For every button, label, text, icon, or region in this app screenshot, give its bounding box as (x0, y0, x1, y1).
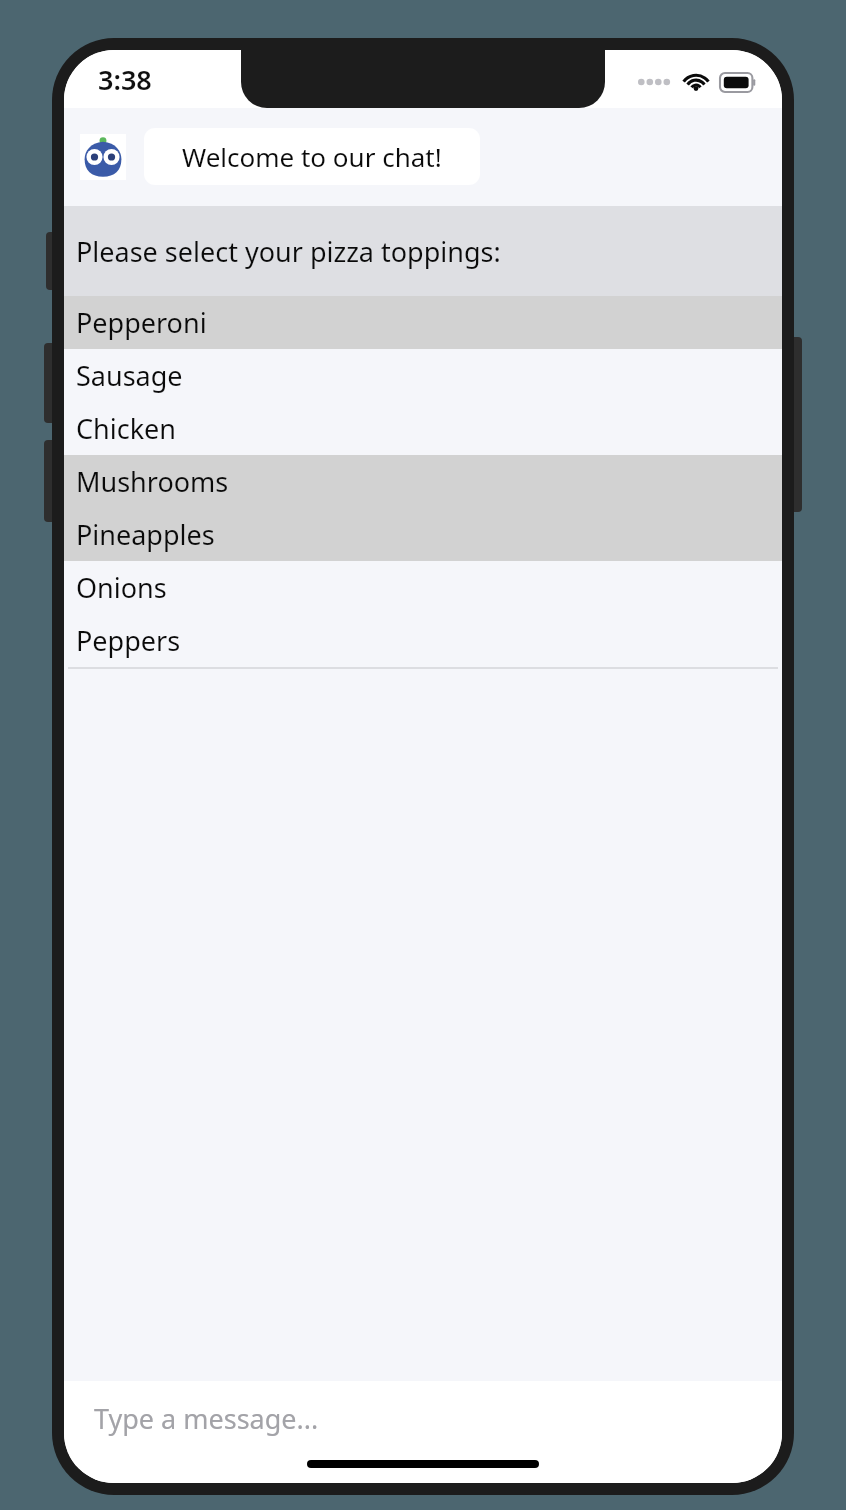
staticText: Chicken (76, 410, 177, 447)
staticText: Peppers (76, 622, 181, 659)
staticText: Welcome to our chat! (182, 139, 442, 174)
staticText: Sausage (76, 357, 183, 394)
staticText: Type a message... (94, 1400, 319, 1437)
staticText: Pineapples (76, 516, 215, 553)
button[interactable]: Welcome to our chat! (144, 128, 480, 185)
button[interactable]: Mushrooms (64, 455, 782, 508)
button[interactable]: Sausage (64, 349, 782, 402)
button[interactable]: Type a message... (64, 1381, 782, 1455)
staticText: Please select your pizza toppings: (76, 233, 501, 270)
staticText: Onions (76, 569, 167, 606)
staticText: Mushrooms (76, 463, 229, 500)
other: Bot avatar (80, 134, 126, 180)
button[interactable]: Pineapples (64, 508, 782, 561)
button[interactable]: Peppers (64, 614, 782, 667)
staticText: Pepperoni (76, 304, 207, 341)
button[interactable]: Chicken (64, 402, 782, 455)
staticText: 3:38 (98, 61, 152, 98)
button[interactable]: Onions (64, 561, 782, 614)
button[interactable]: Pepperoni (64, 296, 782, 349)
